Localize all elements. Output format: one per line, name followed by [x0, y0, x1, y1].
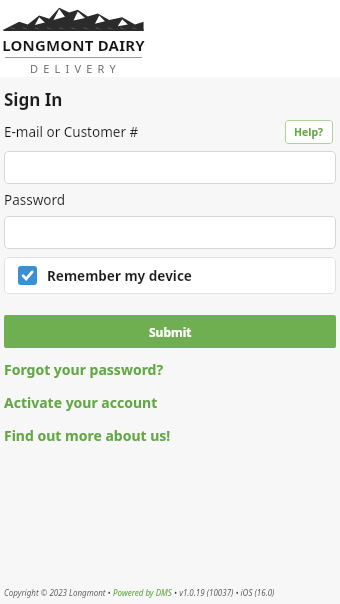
staticText: Remember my device: [47, 267, 192, 285]
staticText: Password: [4, 191, 66, 209]
button[interactable]: Help?: [285, 120, 333, 144]
staticText: Help?: [294, 125, 324, 139]
staticText: DELIVERY: [6, 61, 145, 74]
button[interactable]: Forgot your password?: [0, 360, 340, 379]
staticText: E-mail or Customer #: [4, 123, 139, 141]
button[interactable]: E-mail or Customer number input: [4, 151, 336, 184]
staticText: • v1.0.19 (10037) • iOS (16.0): [172, 587, 275, 598]
staticText: Forgot your password?: [4, 360, 164, 379]
staticText: Find out more about us!: [4, 426, 171, 445]
button[interactable]: Activate your account: [0, 393, 340, 412]
button[interactable]: Submit: [4, 315, 336, 348]
button[interactable]: Remember my device: [4, 257, 336, 294]
staticText: Activate your account: [4, 393, 158, 412]
staticText: LONGMONT DAIRY: [2, 35, 145, 55]
staticText: Sign In: [4, 88, 63, 111]
staticText: Submit: [149, 324, 192, 340]
button[interactable]: Password input: [4, 216, 336, 249]
staticText: Copyright © 2023 Longmont •: [4, 587, 113, 598]
staticText: Powered by DMS: [113, 587, 172, 598]
button[interactable]: Find out more about us!: [0, 426, 340, 445]
